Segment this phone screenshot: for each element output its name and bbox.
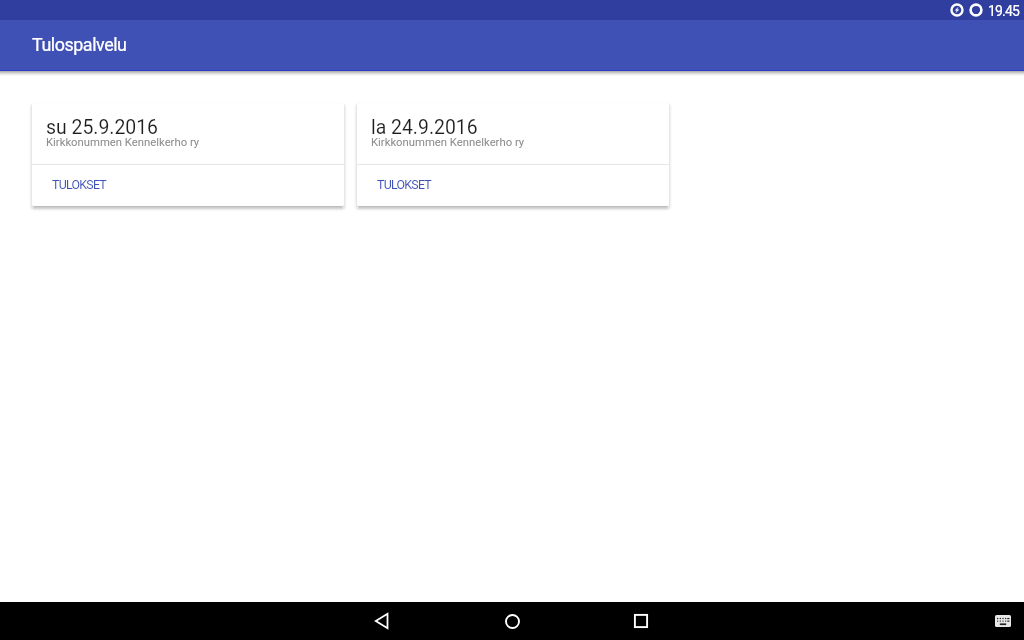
staticText: Kirkkonummen Kennelkerho ry xyxy=(46,136,200,149)
button[interactable]: TULOKSET xyxy=(357,165,669,206)
button[interactable]: Switch keyboard xyxy=(989,607,1017,635)
staticText: TULOKSET xyxy=(52,177,106,192)
button[interactable]: Back xyxy=(360,602,403,640)
staticText: 19.45 xyxy=(988,3,1019,19)
button[interactable]: TULOKSET xyxy=(32,165,344,206)
button[interactable]: Tulospalvelu xyxy=(0,20,1024,71)
staticText: Tulospalvelu xyxy=(32,34,127,55)
button[interactable]: Recent apps xyxy=(619,602,662,640)
staticText: TULOKSET xyxy=(377,177,431,192)
staticText: su 25.9.2016 xyxy=(46,116,159,139)
button[interactable]: su 25.9.2016 xyxy=(32,103,344,206)
staticText: Kirkkonummen Kennelkerho ry xyxy=(371,136,525,149)
button[interactable]: Home xyxy=(491,602,534,640)
button[interactable]: la 24.9.2016 xyxy=(357,103,669,206)
staticText: la 24.9.2016 xyxy=(371,116,478,139)
